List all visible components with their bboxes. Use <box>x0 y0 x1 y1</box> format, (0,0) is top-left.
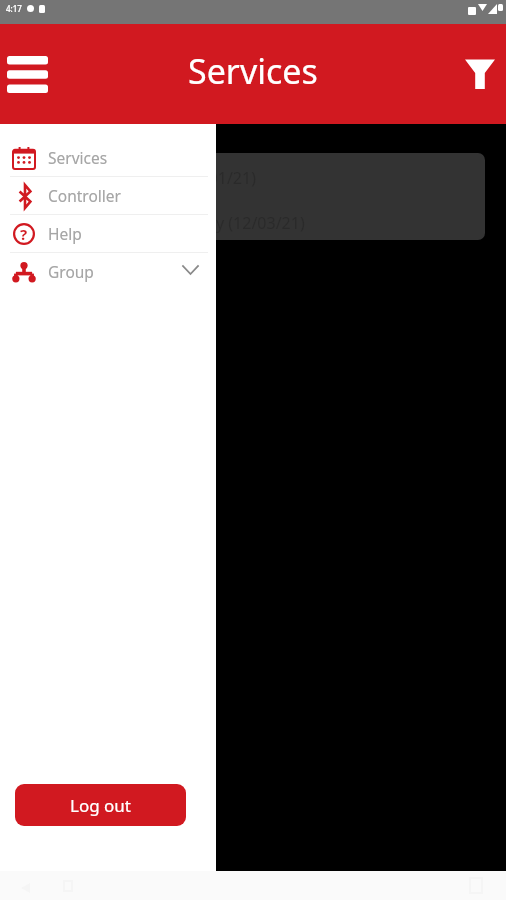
staticText: Help <box>48 223 82 244</box>
staticText: 4:17 <box>6 3 22 14</box>
staticText: Battery Warranty (12/03/21) <box>96 212 305 234</box>
staticText: ? <box>20 224 28 244</box>
button[interactable]: Filter <box>454 24 506 124</box>
button[interactable]: Services <box>0 139 216 176</box>
staticText: Services <box>48 147 108 168</box>
staticText: Log out <box>70 794 131 817</box>
staticText: Services <box>188 48 318 94</box>
button[interactable]: Controller <box>0 177 216 214</box>
staticText: Next Service Due (21/01/21) <box>48 167 256 189</box>
button[interactable]: ? <box>0 215 216 252</box>
staticText: Controller <box>48 185 121 206</box>
button[interactable]: Log out <box>15 784 186 826</box>
button[interactable]: Open navigation menu <box>0 24 54 124</box>
button[interactable]: Group <box>0 253 216 290</box>
staticText: Group <box>48 261 94 282</box>
